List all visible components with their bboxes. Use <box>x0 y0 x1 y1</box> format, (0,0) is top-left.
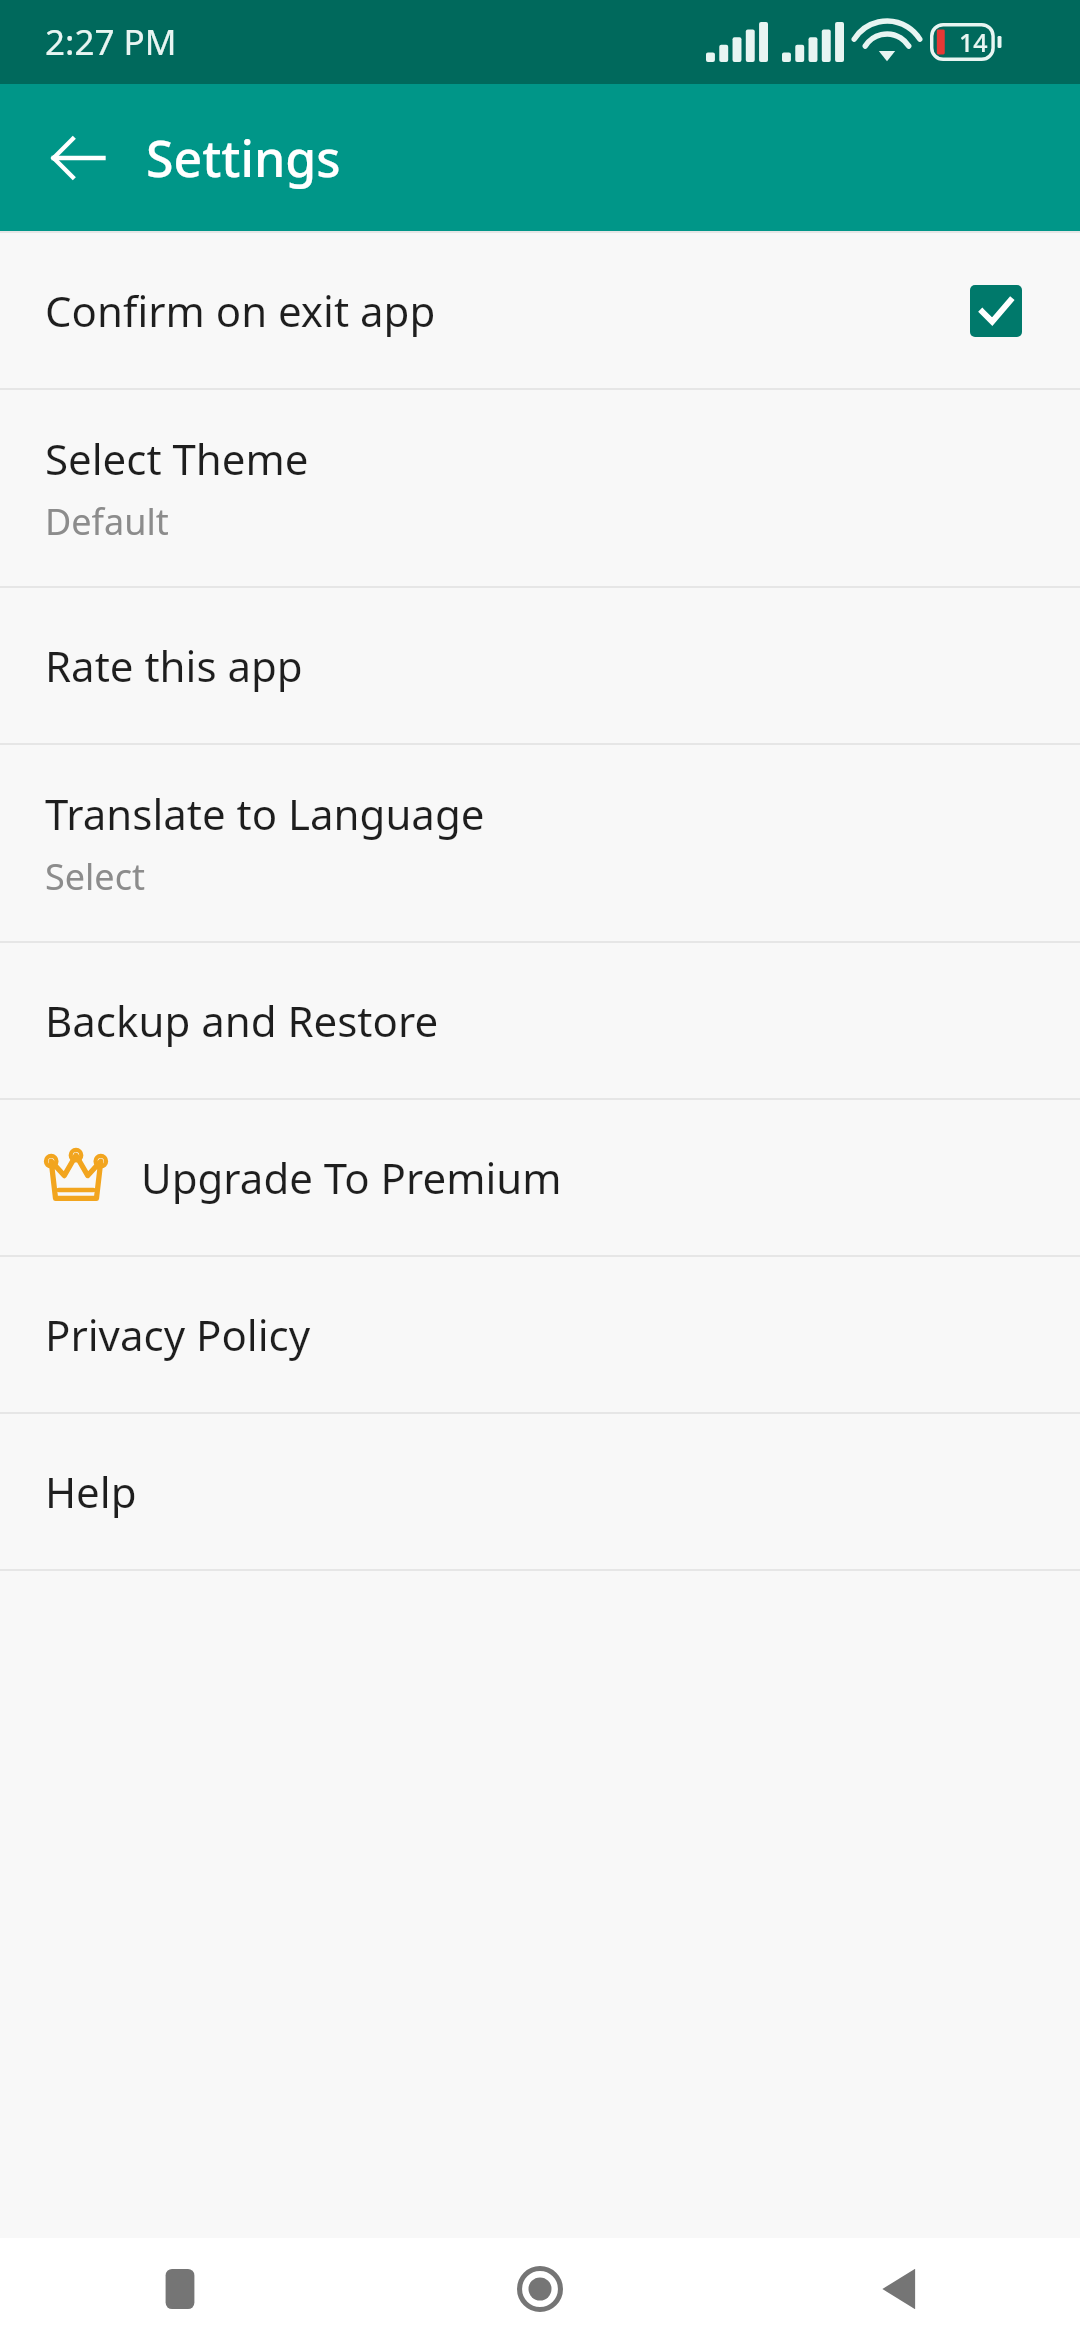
button[interactable]: Select Theme <box>0 390 1080 586</box>
staticText: Select Theme <box>45 430 309 487</box>
staticText: Help <box>45 1463 137 1520</box>
staticText: 2:27 PM <box>45 18 177 66</box>
button[interactable]: Recents <box>0 2238 360 2340</box>
staticText: Default <box>45 497 169 546</box>
button[interactable]: Back <box>24 104 132 212</box>
staticText: Upgrade To Premium <box>141 1149 562 1206</box>
button[interactable]: Backup and Restore <box>0 943 1080 1098</box>
staticText: Privacy Policy <box>45 1306 311 1363</box>
staticText: Rate this app <box>45 637 303 694</box>
button[interactable]: Rate this app <box>0 588 1080 743</box>
staticText: Settings <box>146 124 341 192</box>
staticText: Select <box>45 852 145 901</box>
button[interactable]: Home <box>360 2238 720 2340</box>
button[interactable]: Translate to Language <box>0 745 1080 941</box>
button[interactable]: Back <box>720 2238 1080 2340</box>
button[interactable]: Confirm on exit app <box>0 233 1080 388</box>
button[interactable]: Privacy Policy <box>0 1257 1080 1412</box>
button[interactable]: Help <box>0 1414 1080 1569</box>
staticText: 14 <box>959 25 988 59</box>
staticText: Translate to Language <box>45 785 485 842</box>
staticText: Backup and Restore <box>45 992 439 1049</box>
button[interactable]: Upgrade To Premium <box>0 1100 1080 1255</box>
staticText: Confirm on exit app <box>45 282 970 339</box>
